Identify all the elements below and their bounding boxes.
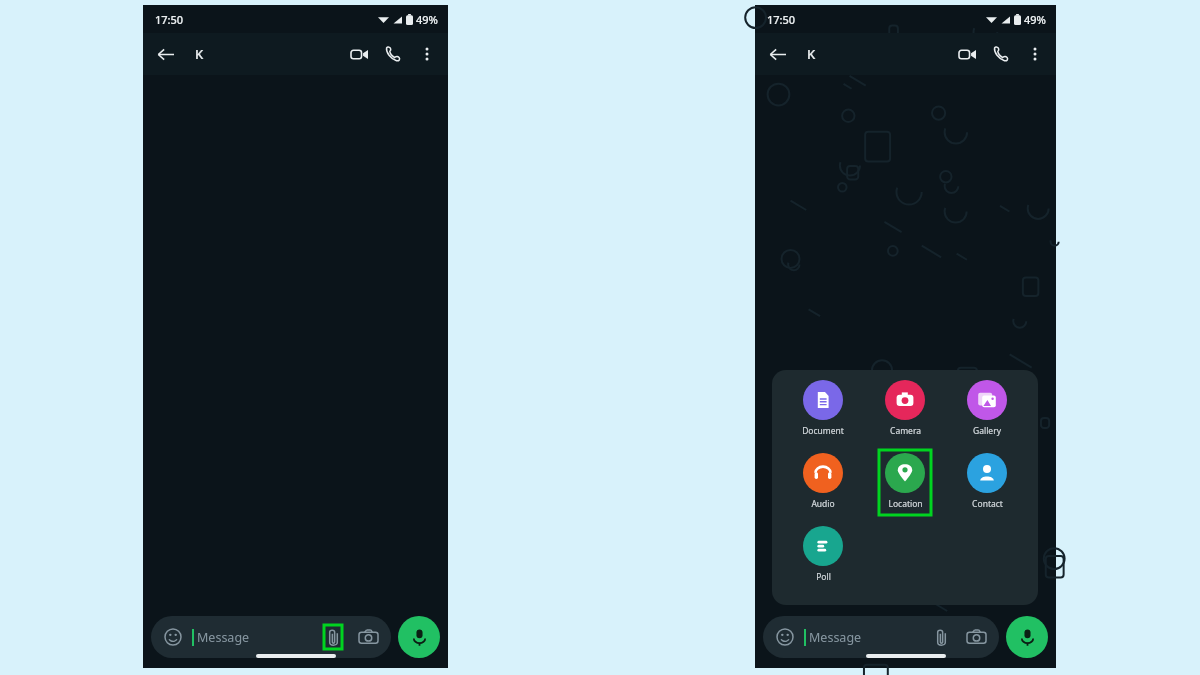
button[interactable]: More options	[410, 37, 444, 71]
staticText: Camera	[890, 425, 921, 437]
staticText: 17:50	[155, 12, 184, 27]
button[interactable]: Camera	[879, 380, 931, 437]
button[interactable]: Camera	[355, 624, 381, 650]
button[interactable]: Contact	[961, 453, 1013, 510]
staticText: K	[807, 45, 816, 63]
staticText: Location	[888, 498, 923, 510]
staticText: Document	[802, 425, 844, 437]
button[interactable]: Voice message	[398, 616, 440, 658]
staticText: 49%	[416, 12, 438, 27]
button[interactable]: Emoji	[763, 616, 999, 658]
button[interactable]: Back	[147, 36, 183, 72]
button[interactable]: More options	[1018, 37, 1052, 71]
button[interactable]: Audio	[797, 453, 849, 510]
staticText: Audio	[811, 498, 835, 510]
button[interactable]: Emoji	[773, 625, 797, 649]
button[interactable]: Camera	[963, 624, 989, 650]
staticText: Message	[197, 629, 250, 646]
staticText: 17:50	[767, 12, 796, 27]
button[interactable]: Emoji	[151, 616, 391, 658]
staticText: Contact	[972, 498, 1003, 510]
button[interactable]: Video call	[950, 37, 984, 71]
staticText: Gallery	[973, 425, 1001, 437]
staticText: K	[195, 45, 204, 63]
button[interactable]: Voice call	[376, 37, 410, 71]
staticText: Poll	[816, 571, 831, 583]
button[interactable]: Voice message	[1006, 616, 1048, 658]
button[interactable]: Back	[759, 36, 795, 72]
button[interactable]: Gallery	[961, 380, 1013, 437]
staticText: 49%	[1024, 12, 1046, 27]
staticText: Message	[809, 629, 862, 646]
button[interactable]: Attach	[928, 624, 954, 650]
button[interactable]: Document	[797, 380, 849, 437]
button[interactable]: Emoji	[161, 625, 185, 649]
button[interactable]: Location	[879, 453, 931, 510]
button[interactable]: Video call	[342, 37, 376, 71]
button[interactable]: Poll	[797, 526, 849, 583]
button[interactable]: Attach	[320, 624, 346, 650]
button[interactable]: Voice call	[984, 37, 1018, 71]
